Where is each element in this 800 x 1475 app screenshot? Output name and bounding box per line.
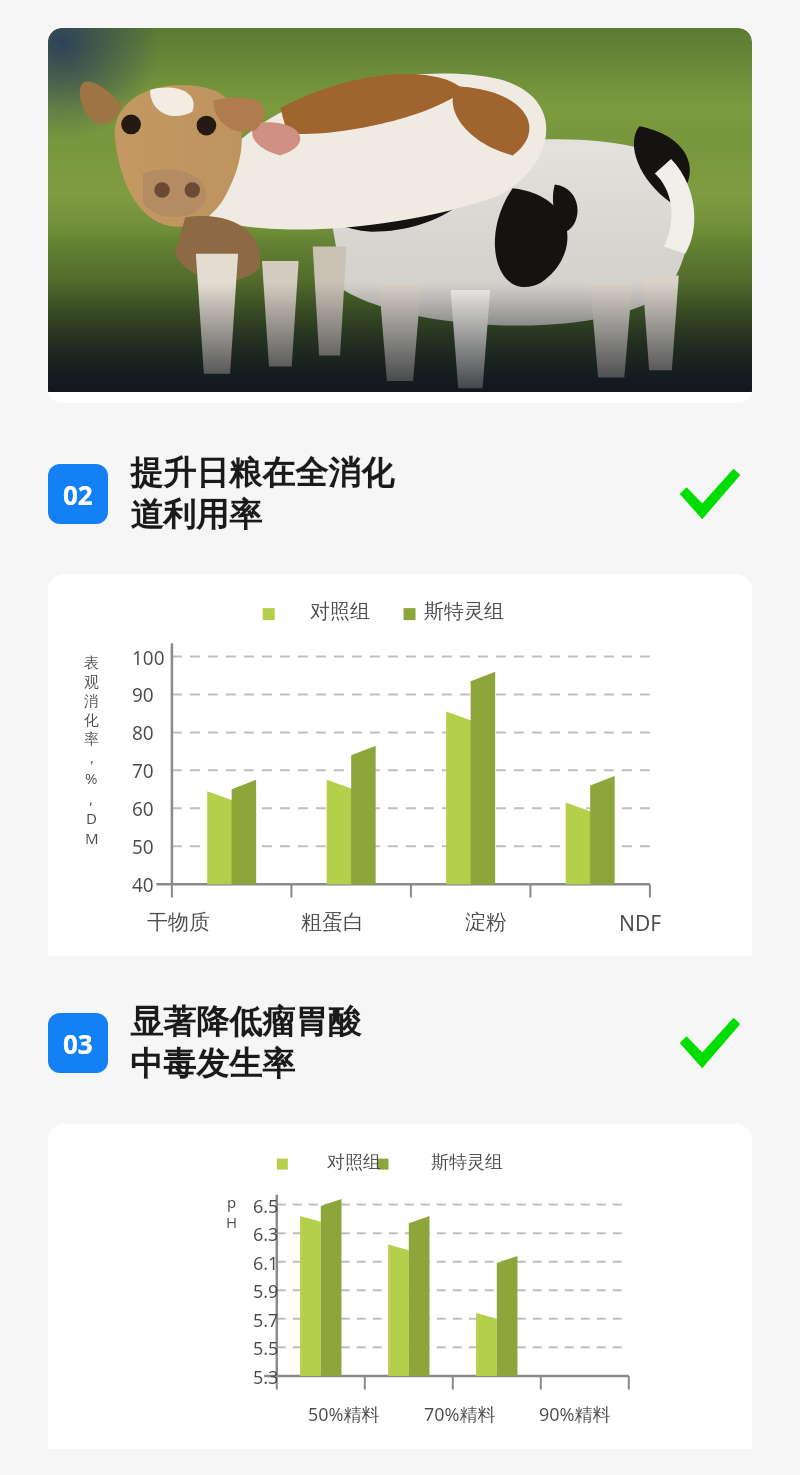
staticText: 消 xyxy=(84,692,99,711)
staticText: 5.3 xyxy=(253,1365,279,1390)
other: Verified xyxy=(666,1000,752,1086)
staticText: 斯特灵组 xyxy=(424,599,504,624)
staticText: 03 xyxy=(63,1026,93,1061)
staticText: 40 xyxy=(132,872,154,898)
staticText: 淀粉 xyxy=(465,909,507,935)
staticText: 对照组 xyxy=(327,1151,381,1174)
staticText: NDF xyxy=(619,909,662,938)
staticText: 50 xyxy=(132,834,154,860)
staticText: 5.7 xyxy=(253,1308,279,1333)
staticText: 70%精料 xyxy=(424,1402,496,1427)
staticText: 70 xyxy=(132,758,154,784)
staticText: 6.1 xyxy=(253,1251,279,1276)
staticText: 显著降低瘤胃酸 xyxy=(130,1001,361,1043)
staticText: M xyxy=(85,828,99,848)
staticText: 中毒发生率 xyxy=(130,1043,295,1085)
staticText: , xyxy=(89,788,94,808)
staticText: 6.5 xyxy=(253,1194,279,1219)
staticText: % xyxy=(85,768,98,788)
staticText: 100 xyxy=(132,645,165,671)
staticText: 干物质 xyxy=(147,909,210,935)
staticText: 80 xyxy=(132,720,154,746)
staticText: 90%精料 xyxy=(539,1402,611,1427)
staticText: 5.5 xyxy=(253,1336,279,1361)
staticText: 粗蛋白 xyxy=(301,909,364,935)
staticText: 6.3 xyxy=(253,1222,279,1247)
button[interactable]: 对照组 xyxy=(48,574,752,956)
staticText: 化 xyxy=(84,711,99,730)
staticText: 50%精料 xyxy=(308,1402,380,1427)
staticText: 提升日粮在全消化 xyxy=(130,452,394,494)
button[interactable]: 03 xyxy=(48,1000,752,1086)
button[interactable]: 对照组 xyxy=(48,1124,752,1449)
staticText: 60 xyxy=(132,796,154,822)
staticText: 斯特灵组 xyxy=(431,1151,503,1174)
other: Verified xyxy=(666,451,752,537)
staticText: 5.9 xyxy=(253,1279,279,1304)
staticText: H xyxy=(226,1212,238,1232)
staticText: 道利用率 xyxy=(130,494,262,536)
staticText: 率 xyxy=(84,730,99,749)
staticText: 观 xyxy=(84,673,99,692)
staticText: D xyxy=(86,808,97,828)
staticText: ， xyxy=(84,749,99,768)
button[interactable]: 02 xyxy=(48,451,752,537)
staticText: 02 xyxy=(63,477,93,512)
staticText: 90 xyxy=(132,682,154,708)
button[interactable] xyxy=(48,28,752,403)
staticText: 对照组 xyxy=(310,599,370,624)
staticText: 表 xyxy=(84,654,99,673)
staticText: p xyxy=(227,1192,237,1212)
